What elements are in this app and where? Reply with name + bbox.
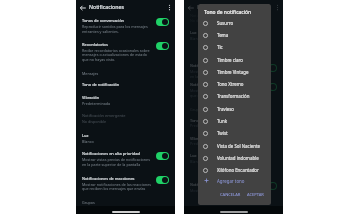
button[interactable]: [184, 180, 283, 201]
button[interactable]: [76, 40, 175, 64]
staticText: Notificaciones en alta prioridad: [190, 182, 248, 187]
button[interactable]: Toggle setting: [264, 64, 277, 72]
staticText: Blanco: [190, 36, 202, 41]
staticText: que reciben los mensajes que envías: [190, 93, 254, 98]
button[interactable]: Toggle setting: [264, 182, 277, 190]
staticText: Timbre Vintage: [217, 69, 249, 75]
staticText: Notificaciones: [89, 3, 124, 10]
button[interactable]: Back: [186, 3, 195, 12]
staticText: Vibración: [190, 136, 208, 141]
staticText: que reciben los mensajes que envías: [82, 186, 146, 191]
button[interactable]: [184, 81, 283, 102]
staticText: Voluntad indomable: [217, 155, 259, 161]
staticText: Predeterminada: [190, 141, 219, 146]
staticText: Mensajes: [82, 71, 99, 76]
button[interactable]: Toggle setting: [156, 176, 169, 184]
staticText: Notificaciones: [197, 3, 232, 10]
staticText: en la parte superior de la pantalla: [190, 74, 249, 79]
staticText: No disponible: [82, 119, 107, 124]
staticText: Notificación emergente: [190, 13, 234, 18]
staticText: Notificaciones en alta prioridad: [82, 151, 140, 156]
staticText: Twist: [217, 130, 228, 136]
button[interactable]: [184, 61, 283, 82]
staticText: Blanco: [190, 159, 202, 164]
staticText: Predeterminada: [190, 123, 219, 128]
button[interactable]: Toggle setting: [156, 18, 169, 26]
staticText: Mostrar notificaciones de las reacciones: [190, 88, 260, 93]
button[interactable]: Timbre claro: [198, 54, 271, 66]
button[interactable]: Tunk: [198, 115, 271, 127]
staticText: Tono de notificación: [190, 118, 228, 123]
staticText: No disponible: [190, 18, 215, 23]
staticText: Mostrar vistas previas de notificaciones: [190, 188, 258, 193]
button[interactable]: Twist: [198, 127, 271, 139]
staticText: Vibración: [82, 95, 100, 100]
button[interactable]: Toggle setting: [264, 83, 277, 91]
staticText: Xilófono Encantador: [217, 167, 259, 173]
staticText: Notificaciones de reacciones: [190, 82, 243, 87]
button[interactable]: Transformación: [198, 90, 271, 102]
button[interactable]: Timbre Vintage: [198, 66, 271, 78]
staticText: Notificaciones en alta prioridad: [190, 63, 248, 68]
staticText: Susurro: [217, 20, 234, 26]
button[interactable]: More options: [273, 3, 282, 12]
button[interactable]: Susurro: [198, 17, 271, 29]
staticText: Tunk: [217, 118, 227, 124]
staticText: Mostrar vistas previas de notificaciones: [190, 69, 258, 74]
staticText: Recibe recordatorios ocasionales sobre: [82, 48, 150, 53]
staticText: Tic: [217, 44, 223, 50]
button[interactable]: CANCELAR: [217, 189, 244, 200]
button[interactable]: [76, 174, 175, 195]
staticText: Luz: [190, 153, 197, 158]
staticText: Vista de Sol Naciente: [217, 143, 261, 149]
staticText: Mostrar vistas previas de notificaciones: [82, 157, 150, 162]
staticText: Tono de notificación: [82, 82, 120, 87]
staticText: entrantes y salientes.: [82, 29, 119, 34]
staticText: Tono Xtremo: [217, 81, 244, 87]
button[interactable]: [76, 149, 175, 170]
staticText: Notificaciones de reacciones: [82, 176, 135, 181]
button[interactable]: [76, 79, 175, 91]
staticText: Travieso: [217, 106, 235, 112]
staticText: en la parte superior de la pantalla: [82, 162, 141, 167]
staticText: Luz: [190, 30, 197, 35]
button[interactable]: [184, 133, 283, 149]
staticText: Blanco: [82, 139, 94, 144]
staticText: Notificación emergente: [82, 113, 126, 118]
button[interactable]: Toggle setting: [156, 42, 169, 50]
button[interactable]: Tic: [198, 41, 271, 53]
button[interactable]: More options: [165, 3, 174, 12]
staticText: Mostrar notificaciones de las reacciones: [82, 182, 152, 187]
staticText: Tema: [217, 32, 229, 38]
button[interactable]: Voluntad indomable: [198, 152, 271, 164]
button[interactable]: [184, 28, 283, 44]
staticText: mensajes o actualizaciones de estado: [82, 52, 147, 57]
button[interactable]: Tema: [198, 29, 271, 41]
staticText: Grupos: [190, 107, 203, 112]
staticText: Reproducir sonidos para los mensajes: [82, 24, 148, 29]
staticText: Luz: [82, 133, 89, 138]
button[interactable]: Travieso: [198, 103, 271, 115]
staticText: Tono de notificación: [204, 9, 252, 16]
staticText: Tonos de conversación: [82, 18, 125, 23]
button[interactable]: [76, 111, 175, 127]
staticText: que no hayas visto.: [82, 57, 116, 62]
button[interactable]: Xilófono Encantador: [198, 164, 271, 176]
button[interactable]: Agregar tono: [198, 175, 271, 187]
button[interactable]: Toggle setting: [156, 152, 169, 160]
staticText: Predeterminada: [82, 101, 111, 106]
button[interactable]: Vista de Sol Naciente: [198, 140, 271, 152]
staticText: Transformación: [217, 93, 250, 99]
staticText: Recordatorios: [82, 42, 108, 47]
button[interactable]: Tono Xtremo: [198, 78, 271, 90]
button[interactable]: [76, 93, 175, 109]
button[interactable]: [76, 17, 175, 37]
staticText: Timbre claro: [217, 57, 243, 63]
staticText: Grupos: [82, 200, 95, 205]
button[interactable]: Back: [78, 3, 87, 12]
button[interactable]: ACEPTAR: [244, 189, 267, 200]
button[interactable]: [76, 131, 175, 147]
button[interactable]: [184, 115, 283, 127]
button[interactable]: [184, 151, 283, 167]
staticText: Agregar tono: [217, 178, 245, 184]
